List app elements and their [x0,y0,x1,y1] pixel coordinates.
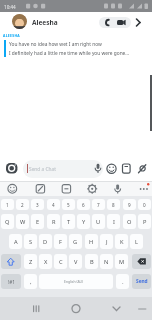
button[interactable]: X [39,254,52,269]
button[interactable]: Y [77,214,90,229]
staticText: 5 [67,202,70,208]
button[interactable]: I [107,214,120,229]
button[interactable]: 7 [92,199,105,210]
staticText: H [89,238,94,246]
button[interactable]: V [69,254,82,269]
button[interactable]: S [24,234,37,249]
button[interactable]: 5 [62,199,75,210]
button[interactable] [61,183,72,194]
button[interactable] [5,162,18,175]
button[interactable]: 1 [1,199,14,210]
staticText: English (AU) [64,279,84,284]
staticText: G [73,238,78,246]
button[interactable]: Send [132,274,151,289]
button[interactable]: . [116,274,129,289]
staticText: S [29,238,33,246]
staticText: Aleesha [32,18,58,27]
button[interactable] [26,299,46,318]
button[interactable]: W [16,214,29,229]
staticText: 7 [97,202,100,208]
staticText: 2 [21,202,24,208]
staticText: 3 [36,202,39,208]
button[interactable]: O [123,214,136,229]
staticText: I definitely had a little me time while … [9,50,130,57]
staticText: !#1 [8,279,15,285]
button[interactable]: U [92,214,105,229]
staticText: W [20,218,26,226]
staticText: Q [5,218,10,226]
staticText: , [30,278,32,286]
button[interactable]: G [69,234,82,249]
staticText: U [96,218,101,226]
button[interactable]: J [100,234,113,249]
button[interactable]: L [130,234,143,249]
button[interactable]: C [54,254,67,269]
button[interactable]: F [54,234,67,249]
button[interactable] [1,254,21,269]
button[interactable] [106,299,126,318]
button[interactable]: P [138,214,151,229]
staticText: A [14,238,18,246]
staticText: 10:44 [4,4,16,10]
staticText: B [90,258,94,266]
button[interactable]: 0 [138,199,151,210]
staticText: T [67,218,71,226]
staticText: 1 [6,202,9,208]
button[interactable] [134,299,150,318]
staticText: You have no idea how wet I am right now [9,41,102,48]
button[interactable]: B [85,254,98,269]
staticText: O [127,218,132,226]
button[interactable]: 8 [107,199,120,210]
staticText: I [113,218,115,226]
staticText: Y [82,218,86,226]
button[interactable]: , [24,274,37,289]
button[interactable] [105,162,118,175]
button[interactable] [132,254,151,269]
button[interactable]: H [85,234,98,249]
button[interactable]: Q [1,214,14,229]
staticText: V [74,258,78,266]
button[interactable] [133,16,145,29]
button[interactable]: D [39,234,52,249]
button[interactable]: K [115,234,128,249]
button[interactable]: 3 [31,199,44,210]
button[interactable] [112,183,123,194]
button[interactable] [39,274,113,289]
button[interactable] [7,183,18,194]
button[interactable]: T [62,214,75,229]
staticText: E [36,218,40,226]
staticText: . [122,278,124,286]
staticText: P [143,218,147,226]
button[interactable]: N [100,254,113,269]
button[interactable]: Z [24,254,37,269]
button[interactable] [99,17,131,28]
staticText: 6 [82,202,85,208]
staticText: J [106,238,108,246]
staticText: 8 [112,202,115,208]
button[interactable] [23,160,103,178]
staticText: 0 [143,202,146,208]
button[interactable]: 9 [123,199,136,210]
staticText: M [119,258,125,266]
button[interactable]: !#1 [1,274,21,289]
button[interactable] [66,299,86,318]
button[interactable] [135,162,149,175]
button[interactable]: A [9,234,22,249]
button[interactable] [139,183,150,194]
staticText: Z [29,258,33,266]
staticText: N [104,258,109,266]
button[interactable] [120,162,133,175]
button[interactable] [87,183,98,194]
button[interactable]: 4 [47,199,60,210]
button[interactable]: R [47,214,60,229]
button[interactable]: M [115,254,128,269]
staticText: 4 [52,202,55,208]
staticText: K [120,238,124,246]
button[interactable]: 6 [77,199,90,210]
staticText: X [44,258,48,266]
button[interactable] [12,14,27,29]
button[interactable]: E [31,214,44,229]
button[interactable]: 2 [16,199,29,210]
staticText: L [135,238,138,246]
button[interactable] [35,183,46,194]
